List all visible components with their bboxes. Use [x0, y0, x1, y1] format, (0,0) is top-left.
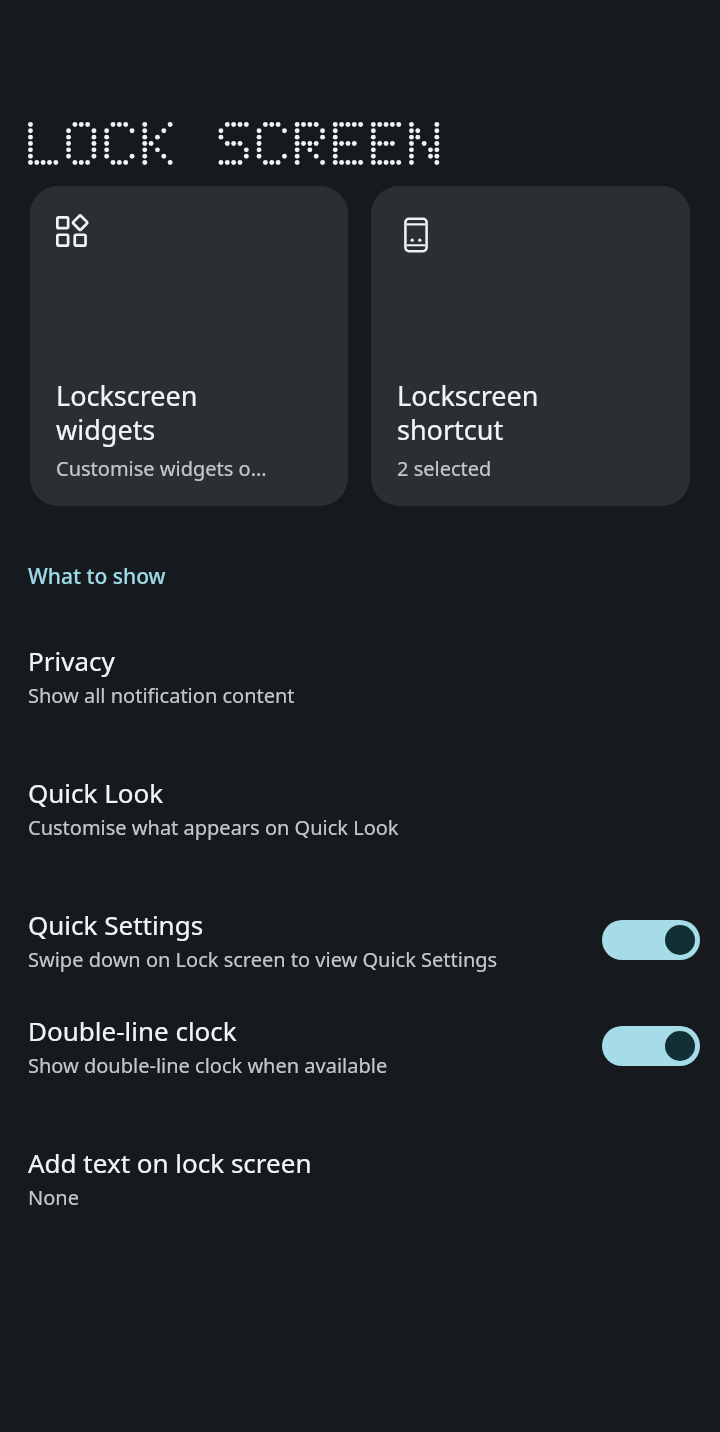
staticText: Show all notification content	[28, 682, 295, 709]
staticText: 2 selected	[397, 455, 492, 482]
staticText: Quick Look	[28, 775, 164, 810]
staticText: Swipe down on Lock screen to view Quick …	[28, 946, 498, 973]
button[interactable]: Privacy	[0, 639, 720, 713]
staticText: None	[28, 1184, 79, 1211]
button[interactable]: Quick Settings	[0, 903, 720, 977]
button[interactable]: Double-line clock	[0, 1009, 720, 1083]
staticText: Double-line clock	[28, 1013, 237, 1048]
staticText: Lockscreen shortcut	[397, 377, 539, 448]
staticText: Privacy	[28, 643, 115, 678]
button[interactable]: Toggle	[602, 920, 700, 960]
staticText: What to show	[28, 562, 166, 591]
button[interactable]: Lockscreen widgets	[30, 186, 348, 506]
button[interactable]: Lockscreen shortcut	[371, 186, 690, 506]
staticText: Show double-line clock when available	[28, 1052, 388, 1079]
staticText: Add text on lock screen	[28, 1145, 312, 1180]
button[interactable]: Quick Look	[0, 771, 720, 845]
staticText: Customise widgets o…	[56, 455, 267, 482]
button[interactable]: Add text on lock screen	[0, 1141, 720, 1215]
staticText: Customise what appears on Quick Look	[28, 814, 399, 841]
button[interactable]: Toggle	[602, 1026, 700, 1066]
staticText: Lockscreen widgets	[56, 377, 198, 448]
staticText: Quick Settings	[28, 907, 204, 942]
